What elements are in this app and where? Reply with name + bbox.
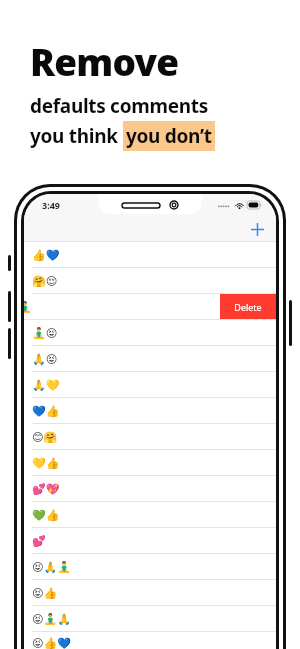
button[interactable]: 👍💙 (24, 242, 276, 268)
staticText: 💕💖 (32, 483, 60, 496)
staticText: 🙏💛 (32, 379, 60, 392)
staticText: 👍💙 (32, 249, 60, 262)
button[interactable]: 😝🙏🧘‍♂️ (24, 554, 276, 580)
button[interactable]: 😝🧘‍♂️🙏 (24, 606, 276, 632)
button[interactable]: 🙏💛 (24, 372, 276, 398)
button[interactable]: 🙏😝 (24, 346, 276, 372)
staticText: Remove (30, 36, 179, 86)
staticText: 🙏😝 (32, 353, 58, 366)
button[interactable]: 💕 (24, 528, 276, 554)
staticText: you think (30, 123, 123, 149)
button[interactable]: 🤗😌 (24, 268, 276, 294)
staticText: defaults comments (30, 93, 208, 119)
staticText: 😝👍 (32, 587, 58, 600)
staticText: 😊🤗 (32, 431, 58, 444)
staticText: 💛👍 (32, 457, 60, 470)
button[interactable]: 💛👍 (24, 450, 276, 476)
staticText: 🧘‍♂️ (24, 301, 32, 314)
staticText: 😝👍💙 (32, 637, 71, 649)
staticText: 😝🧘‍♂️🙏 (32, 613, 71, 626)
staticText: 3:49 (42, 199, 60, 211)
button[interactable]: 💚👍 (24, 502, 276, 528)
button[interactable]: 🧘‍♂️ (24, 294, 276, 320)
staticText: 🧘‍♂️😝 (32, 327, 58, 340)
button[interactable]: Add comment (244, 216, 270, 242)
staticText: 💕 (32, 535, 46, 548)
staticText: you don’t (126, 123, 212, 149)
button[interactable]: 💙👍 (24, 398, 276, 424)
button[interactable]: 🧘‍♂️😝 (24, 320, 276, 346)
button[interactable]: 😝👍💙 (24, 632, 276, 649)
staticText: Delete (234, 301, 262, 313)
staticText: 😝🙏🧘‍♂️ (32, 561, 71, 574)
button[interactable]: 😊🤗 (24, 424, 276, 450)
button[interactable]: 😝👍 (24, 580, 276, 606)
staticText: 💙👍 (32, 405, 60, 418)
button[interactable]: 💕💖 (24, 476, 276, 502)
button[interactable]: Delete (220, 294, 276, 320)
staticText: 💚👍 (32, 509, 60, 522)
staticText: 🤗😌 (32, 275, 58, 288)
